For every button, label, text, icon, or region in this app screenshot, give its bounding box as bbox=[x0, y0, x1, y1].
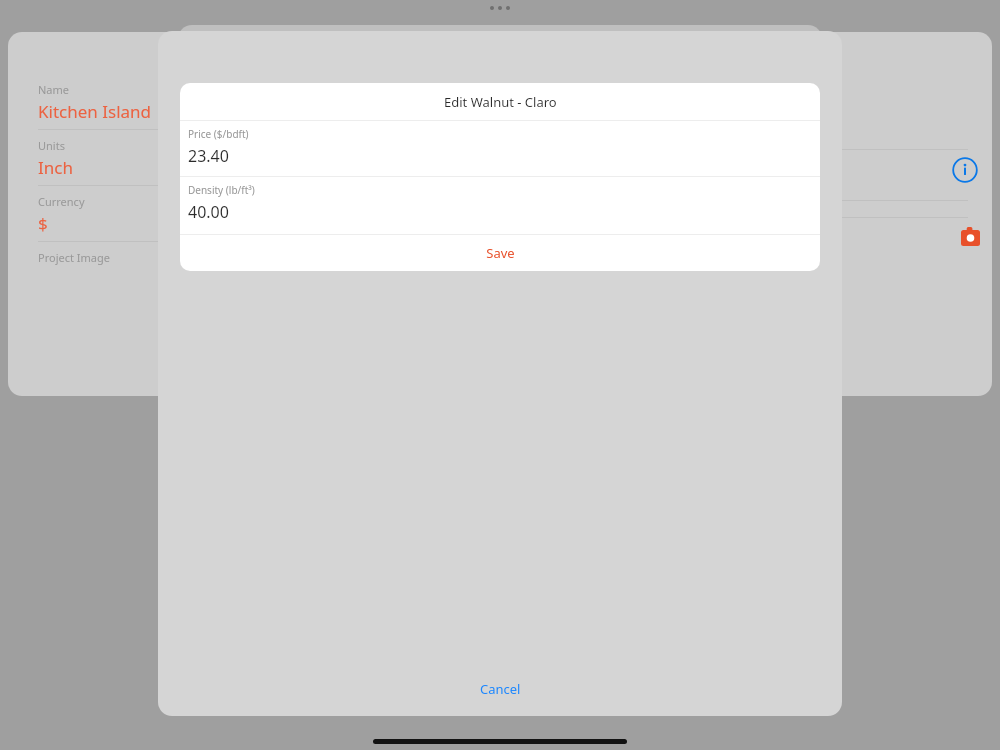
staticText: 40.00 bbox=[188, 201, 229, 223]
button[interactable]: Cancel bbox=[420, 676, 580, 702]
staticText: Density (lb/ft³) bbox=[188, 183, 255, 197]
staticText: Price ($/bdft) bbox=[188, 127, 249, 141]
staticText: Save bbox=[486, 244, 515, 262]
staticText: Project Image bbox=[38, 250, 110, 265]
staticText: Cancel bbox=[480, 680, 521, 698]
staticText: Units bbox=[38, 138, 65, 153]
staticText: Edit Walnut - Claro bbox=[444, 93, 557, 111]
staticText: Currency bbox=[38, 194, 85, 209]
staticText: Inch bbox=[38, 156, 73, 179]
staticText: 23.40 bbox=[188, 145, 229, 167]
button[interactable]: Take photo bbox=[956, 222, 984, 250]
staticText: Name bbox=[38, 82, 70, 97]
button[interactable]: Save bbox=[180, 235, 820, 271]
staticText: Kitchen Island bbox=[38, 100, 152, 123]
button[interactable]: Information bbox=[946, 151, 984, 189]
staticText: $ bbox=[38, 212, 48, 235]
